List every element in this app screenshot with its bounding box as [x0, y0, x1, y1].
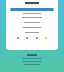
button[interactable] — [10, 8, 54, 11]
